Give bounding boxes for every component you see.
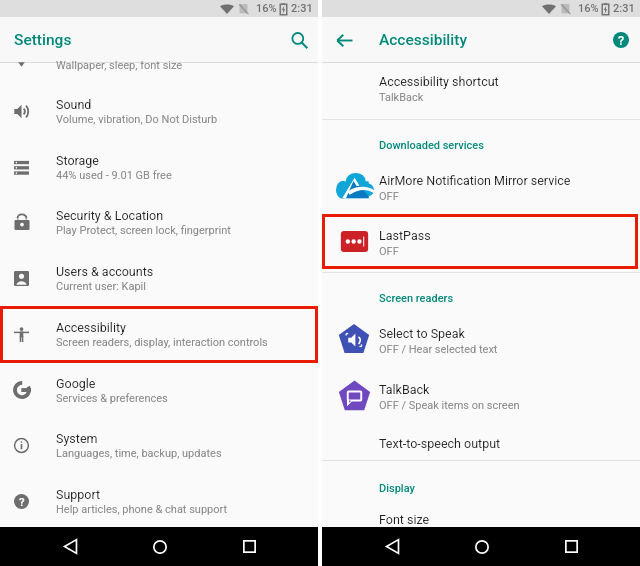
staticText: TalkBack <box>379 382 430 397</box>
staticText: OFF <box>379 245 399 258</box>
staticText: Font size <box>379 512 430 527</box>
staticText: Display <box>379 482 415 495</box>
staticText: System <box>56 431 98 446</box>
staticText: Google <box>56 376 96 391</box>
button[interactable]: Home <box>140 527 180 566</box>
button[interactable]: Recent apps <box>551 527 591 566</box>
staticText: Accessibility shortcut <box>379 74 499 89</box>
staticText: Downloaded services <box>379 139 484 152</box>
button[interactable]: Back <box>331 27 357 53</box>
staticText: Current user: Kapil <box>56 280 146 293</box>
button[interactable]: ? <box>0 484 318 528</box>
staticText: ? <box>618 33 625 48</box>
button[interactable]: Back <box>372 527 412 566</box>
staticText: Help articles, phone & chat support <box>56 503 228 516</box>
staticText: OFF <box>379 190 399 203</box>
staticText: Security & Location <box>56 208 164 223</box>
button[interactable]: TalkBack <box>322 377 640 423</box>
staticText: Users & accounts <box>56 264 154 279</box>
staticText: Wallpaper, sleep, font size <box>56 61 183 72</box>
button[interactable]: System <box>0 428 318 474</box>
button[interactable]: Users & accounts <box>0 261 318 307</box>
button[interactable]: Recent apps <box>229 527 269 566</box>
button[interactable]: Google <box>0 373 318 419</box>
staticText: Text-to-speech output <box>379 436 501 451</box>
staticText: 44% used - 9.01 GB free <box>56 169 172 182</box>
staticText: Accessibility <box>56 320 126 335</box>
staticText: Storage <box>56 153 99 168</box>
staticText: Support <box>56 487 101 502</box>
staticText: Screen readers <box>379 292 454 305</box>
staticText: Services & preferences <box>56 392 168 405</box>
button[interactable]: LastPass <box>322 223 640 269</box>
button[interactable]: Text-to-speech output <box>322 428 640 460</box>
staticText: TalkBack <box>379 91 424 104</box>
staticText: 2:31 <box>291 2 313 15</box>
button[interactable]: Back <box>50 527 90 566</box>
staticText: Settings <box>14 31 72 49</box>
button[interactable]: AirMore Notification Mirror service <box>322 168 640 214</box>
button[interactable]: Search <box>285 26 313 54</box>
button[interactable]: Storage <box>0 150 318 196</box>
staticText: Sound <box>56 97 92 112</box>
staticText: 2:31 <box>613 2 635 15</box>
staticText: AirMore Notification Mirror service <box>379 173 571 188</box>
staticText: Select to Speak <box>379 326 465 341</box>
button[interactable]: Sound <box>0 94 318 140</box>
staticText: Accessibility <box>379 31 467 49</box>
button[interactable]: Home <box>462 527 502 566</box>
staticText: Languages, time, backup, updates <box>56 447 222 460</box>
staticText: ? <box>19 495 25 508</box>
staticText: 16% <box>256 2 277 15</box>
staticText: OFF / Hear selected text <box>379 343 498 356</box>
button[interactable]: Select to Speak <box>322 321 640 367</box>
staticText: OFF / Speak items on screen <box>379 399 520 412</box>
button[interactable]: Help <box>608 27 634 53</box>
button[interactable]: Security & Location <box>0 205 318 251</box>
staticText: LastPass <box>379 228 431 243</box>
staticText: 16% <box>578 2 599 15</box>
staticText: Volume, vibration, Do Not Disturb <box>56 113 218 126</box>
staticText: Screen readers, display, interaction con… <box>56 336 268 349</box>
staticText: Play Protect, screen lock, fingerprint <box>56 224 231 237</box>
button[interactable]: Font size <box>322 504 640 528</box>
button[interactable]: Accessibility <box>0 317 318 363</box>
